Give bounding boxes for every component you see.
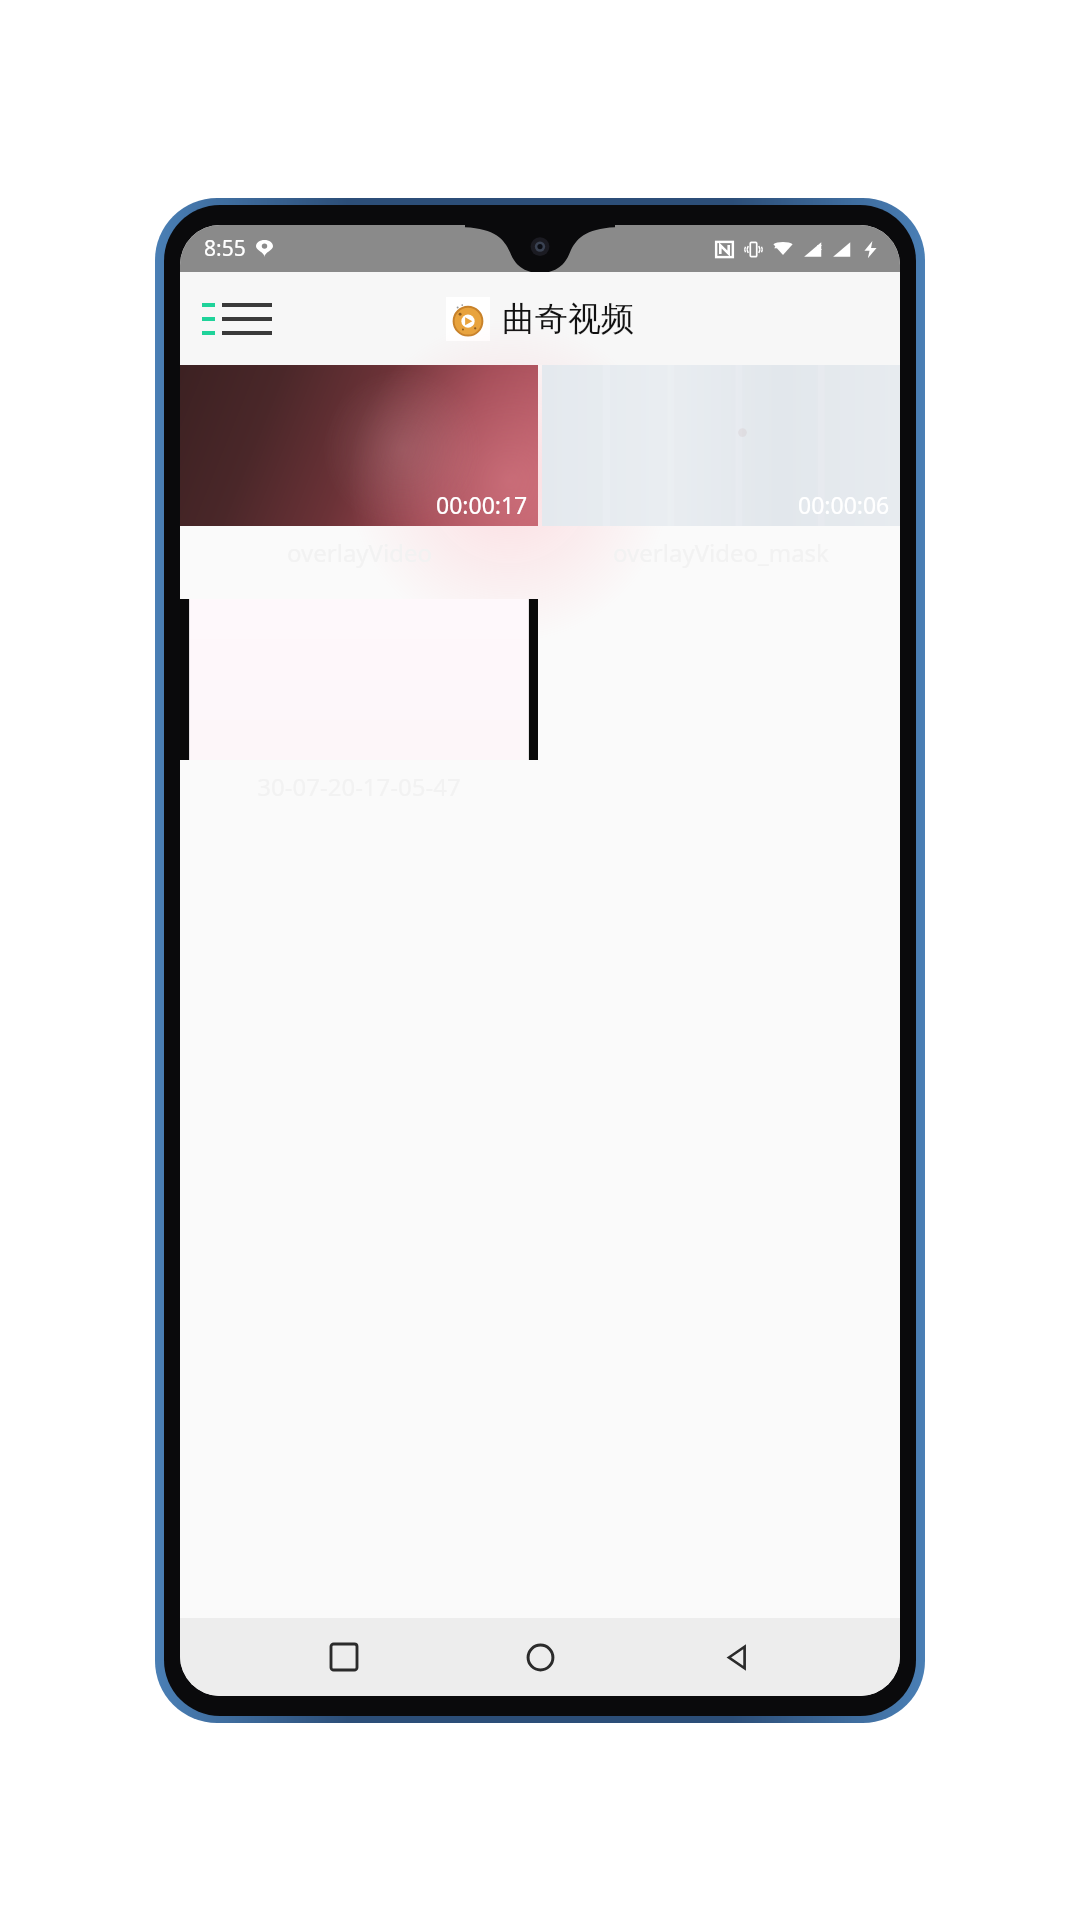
staticText: 00:00:06 (798, 489, 890, 520)
button[interactable]: Recent apps (312, 1625, 376, 1689)
button[interactable]: Menu (194, 293, 280, 345)
staticText: 00:00:17 (436, 489, 528, 520)
button[interactable]: 00:00:06 (542, 365, 900, 569)
staticText: overlayVideo (287, 536, 432, 569)
staticText: 8:55 (204, 234, 246, 263)
button[interactable]: 00:00:17 (180, 365, 538, 569)
button[interactable]: Home (508, 1625, 572, 1689)
button[interactable]: Back (704, 1625, 768, 1689)
staticText: 曲奇视频 (502, 298, 634, 340)
staticText: x (817, 240, 822, 252)
button[interactable]: 30-07-20-17-05-47 (180, 599, 538, 803)
